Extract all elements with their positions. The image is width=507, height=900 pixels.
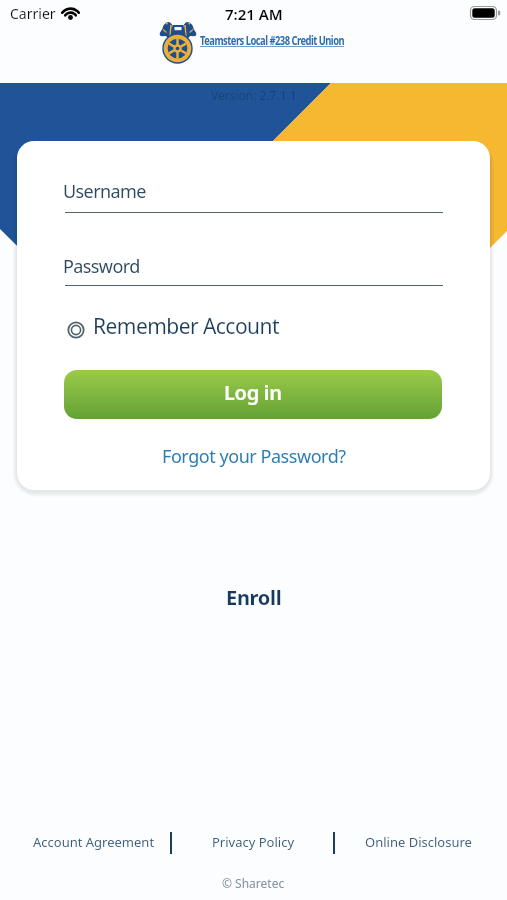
staticText: © Sharetec: [222, 875, 285, 891]
button[interactable]: Online Disclosure: [365, 833, 472, 851]
staticText: Carrier: [10, 4, 56, 23]
staticText: Password: [63, 254, 140, 279]
button[interactable]: Remember Account: [64, 312, 250, 342]
staticText: Username: [63, 179, 146, 204]
staticText: 7:21 AM: [225, 4, 283, 24]
button[interactable]: Privacy Policy: [212, 833, 295, 851]
button[interactable]: Password: [63, 250, 445, 290]
button[interactable]: Username: [63, 175, 445, 215]
staticText: Log in: [224, 379, 282, 406]
button[interactable]: Enroll: [226, 584, 282, 611]
button[interactable]: Teamsters Local #238 Credit Union: [200, 31, 345, 49]
staticText: Version: 2.7.1.1: [211, 87, 297, 103]
button[interactable]: Account Agreement: [33, 833, 155, 851]
button[interactable]: Log in: [64, 370, 442, 419]
button[interactable]: Forgot your Password?: [162, 444, 346, 469]
staticText: Remember Account: [93, 312, 279, 341]
